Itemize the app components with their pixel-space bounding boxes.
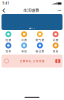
staticText: 更多 [53,50,59,53]
staticText: 宽带 [5,50,11,53]
staticText: 燃气费 [35,38,44,42]
staticText: 物业费 [35,50,44,53]
button[interactable]: 话费 [48,31,64,42]
staticText: 9:41 [2,2,9,5]
button[interactable]: 更多 [48,42,64,53]
button[interactable]: 电费 [0,31,16,42]
button[interactable] [0,14,64,30]
button[interactable]: 有线 [16,42,32,53]
button[interactable]: 燃气费 [32,31,48,42]
button[interactable]: 水费 [16,31,32,42]
staticText: 话费 [53,38,59,42]
staticText: 有线 [21,50,27,53]
button[interactable]: More [56,7,63,13]
button[interactable]: 宽带 [0,42,16,53]
staticText: 交费有礼 立享优惠 [20,59,45,63]
button[interactable]: 交费有礼 立享优惠 [0,55,64,68]
button[interactable]: Back [1,7,7,13]
button[interactable]: 物业费 [32,42,48,53]
staticText: 生活缴费 [23,8,39,13]
staticText: 水费 [21,38,27,42]
staticText: 电费 [5,38,11,42]
